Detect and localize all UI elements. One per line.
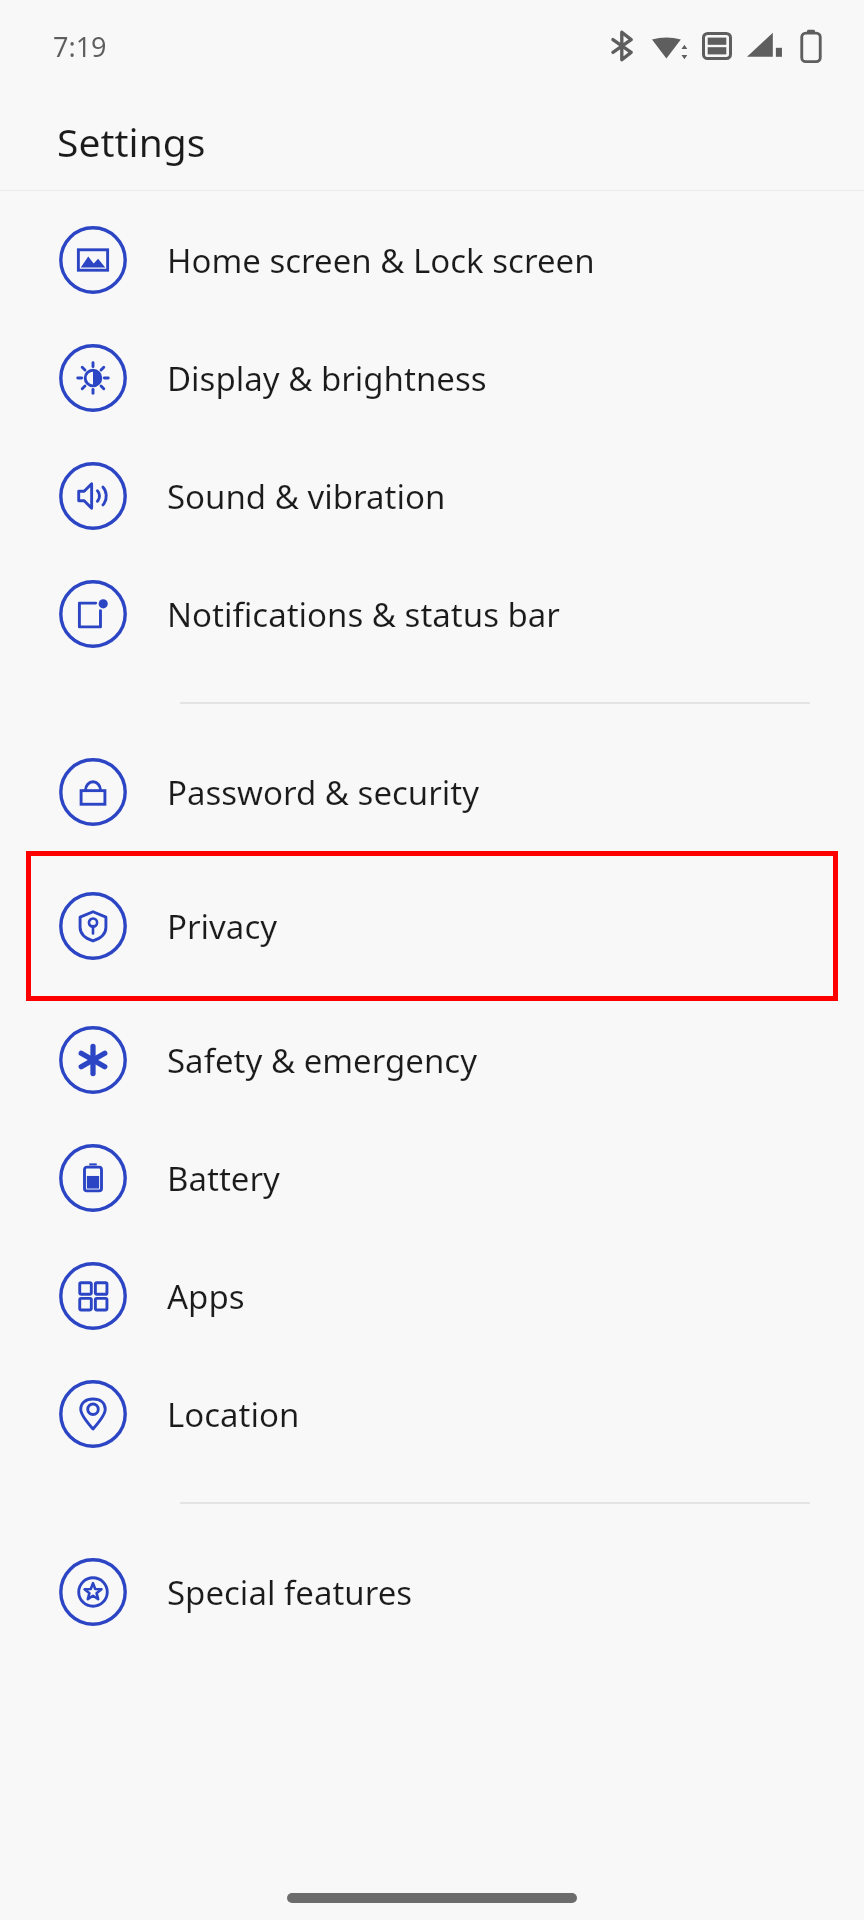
staticText: Display & brightness (167, 356, 487, 401)
staticText: Password & security (167, 770, 480, 815)
staticText: Home screen & Lock screen (167, 238, 595, 283)
staticText: Safety & emergency (167, 1038, 478, 1083)
staticText: Settings (57, 115, 206, 168)
button[interactable]: Display & brightness (0, 319, 864, 437)
button[interactable]: Apps (0, 1237, 864, 1355)
button[interactable]: Safety & emergency (0, 1001, 864, 1119)
staticText: 7:19 (53, 28, 107, 65)
button[interactable]: Location (0, 1355, 864, 1473)
staticText: Privacy (167, 904, 278, 949)
staticText: Location (167, 1392, 300, 1437)
button[interactable]: Sound & vibration (0, 437, 864, 555)
staticText: Special features (167, 1570, 413, 1615)
button[interactable]: Notifications & status bar (0, 555, 864, 673)
button[interactable]: Battery (0, 1119, 864, 1237)
button[interactable]: Privacy (26, 851, 838, 1001)
button[interactable]: Password & security (0, 733, 864, 851)
staticText: Notifications & status bar (167, 592, 560, 637)
staticText: Battery (167, 1156, 280, 1201)
button[interactable]: Special features (0, 1533, 864, 1651)
button[interactable]: Home screen & Lock screen (0, 201, 864, 319)
staticText: Apps (167, 1274, 245, 1319)
staticText: Sound & vibration (167, 474, 446, 519)
